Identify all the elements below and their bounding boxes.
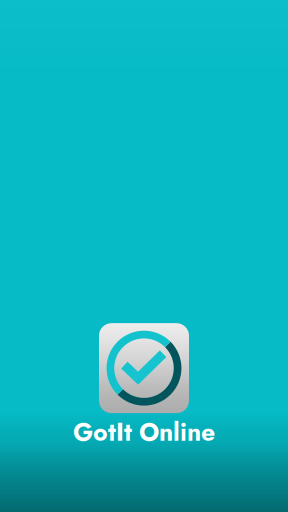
staticText: GotIt Online (73, 414, 215, 450)
